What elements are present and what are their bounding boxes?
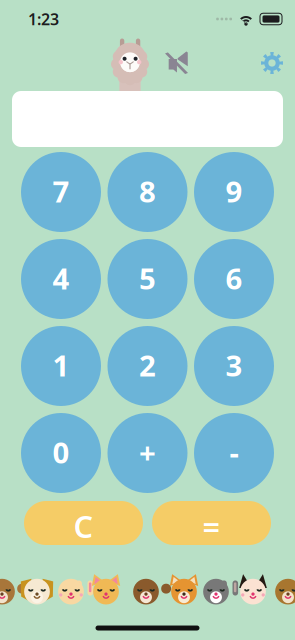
button[interactable]: 8 <box>107 152 187 232</box>
button[interactable]: C <box>24 501 143 545</box>
staticText: 3 <box>225 345 242 384</box>
button[interactable]: + <box>107 413 187 493</box>
button[interactable]: 1 <box>21 326 101 406</box>
button[interactable]: 4 <box>21 239 101 319</box>
button[interactable]: = <box>152 501 271 545</box>
button[interactable]: 3 <box>194 326 274 406</box>
button[interactable]: 2 <box>107 326 187 406</box>
staticText: = <box>202 506 220 546</box>
staticText: 2 <box>139 345 156 384</box>
button[interactable]: 0 <box>21 413 101 493</box>
button[interactable]: Mute <box>165 50 188 75</box>
staticText: + <box>139 432 156 471</box>
staticText: C <box>73 506 93 546</box>
button[interactable]: 7 <box>21 152 101 232</box>
staticText: 0 <box>52 432 69 471</box>
staticText: 4 <box>52 258 69 297</box>
staticText: - <box>229 432 238 471</box>
staticText: 6 <box>225 258 242 297</box>
button[interactable]: Settings <box>261 52 283 74</box>
button[interactable]: 6 <box>194 239 274 319</box>
staticText: 1 <box>52 345 69 384</box>
staticText: 9 <box>225 171 242 210</box>
staticText: 5 <box>139 258 156 297</box>
button[interactable]: - <box>194 413 274 493</box>
button[interactable]: 9 <box>194 152 274 232</box>
staticText: 1:23 <box>28 8 59 30</box>
staticText: 7 <box>52 171 69 210</box>
button[interactable]: 5 <box>107 239 187 319</box>
staticText: 8 <box>139 171 156 210</box>
